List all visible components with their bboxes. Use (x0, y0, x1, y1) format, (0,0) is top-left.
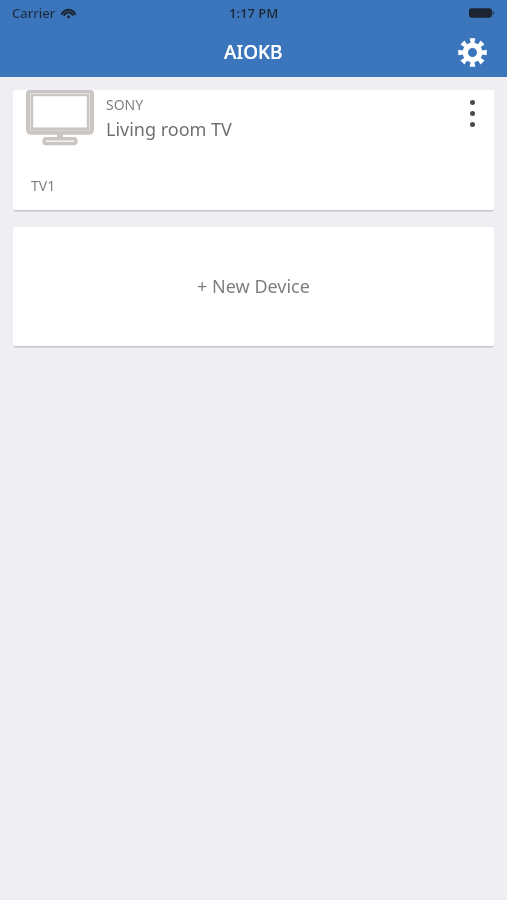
staticText: TV1 (31, 176, 56, 195)
staticText: 1:17 PM (229, 4, 279, 22)
button[interactable]: More options (450, 90, 494, 127)
staticText: SONY (106, 95, 144, 114)
button[interactable]: + New Device (13, 227, 494, 346)
button[interactable]: SONY (13, 90, 450, 146)
staticText: AIOKB (224, 39, 283, 65)
staticText: + New Device (197, 274, 310, 299)
staticText: Carrier (12, 4, 56, 22)
button[interactable]: Settings (455, 35, 489, 69)
staticText: Living room TV (106, 117, 232, 142)
